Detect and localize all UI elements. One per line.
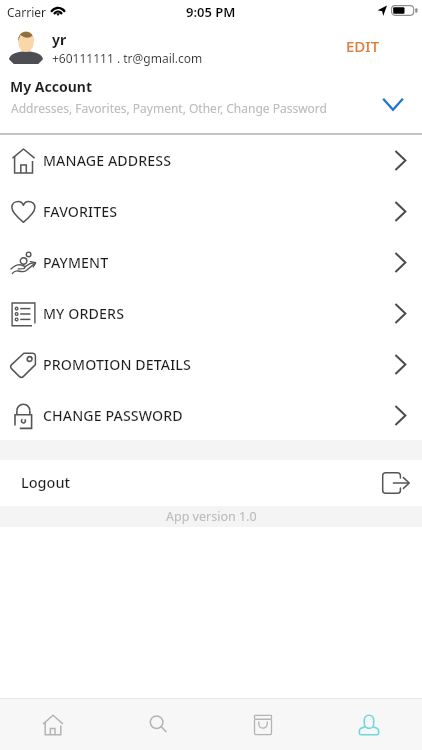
staticText: EDIT: [346, 36, 380, 56]
staticText: PROMOTION DETAILS: [43, 355, 191, 374]
staticText: PAYMENT: [43, 253, 109, 272]
staticText: FAVORITES: [43, 202, 118, 221]
button[interactable]: Home: [0, 699, 105, 750]
staticText: Addresses, Favorites, Payment, Other, Ch…: [11, 100, 327, 116]
staticText: MANAGE ADDRESS: [43, 151, 172, 170]
button[interactable]: Search: [105, 699, 210, 750]
button[interactable]: PAYMENT: [0, 237, 422, 288]
staticText: Carrier: [7, 4, 47, 20]
button[interactable]: EDIT: [340, 34, 386, 58]
staticText: 9:05 PM: [186, 3, 236, 21]
button[interactable]: MY ORDERS: [0, 288, 422, 339]
button[interactable]: CHANGE PASSWORD: [0, 390, 422, 441]
staticText: yr: [52, 30, 67, 49]
button[interactable]: Profile: [316, 699, 422, 750]
staticText: CHANGE PASSWORD: [43, 406, 183, 425]
staticText: Logout: [21, 472, 71, 492]
button[interactable]: FAVORITES: [0, 186, 422, 237]
staticText: +60111111 . tr@gmail.com: [52, 50, 203, 66]
staticText: My Account: [10, 77, 92, 96]
staticText: App version 1.0: [166, 508, 257, 525]
button[interactable]: My Account: [0, 74, 422, 132]
button[interactable]: MANAGE ADDRESS: [0, 135, 422, 186]
button[interactable]: Shopping bag: [210, 699, 316, 750]
button[interactable]: PROMOTION DETAILS: [0, 339, 422, 390]
button[interactable]: Logout: [0, 460, 422, 506]
staticText: MY ORDERS: [43, 304, 125, 323]
